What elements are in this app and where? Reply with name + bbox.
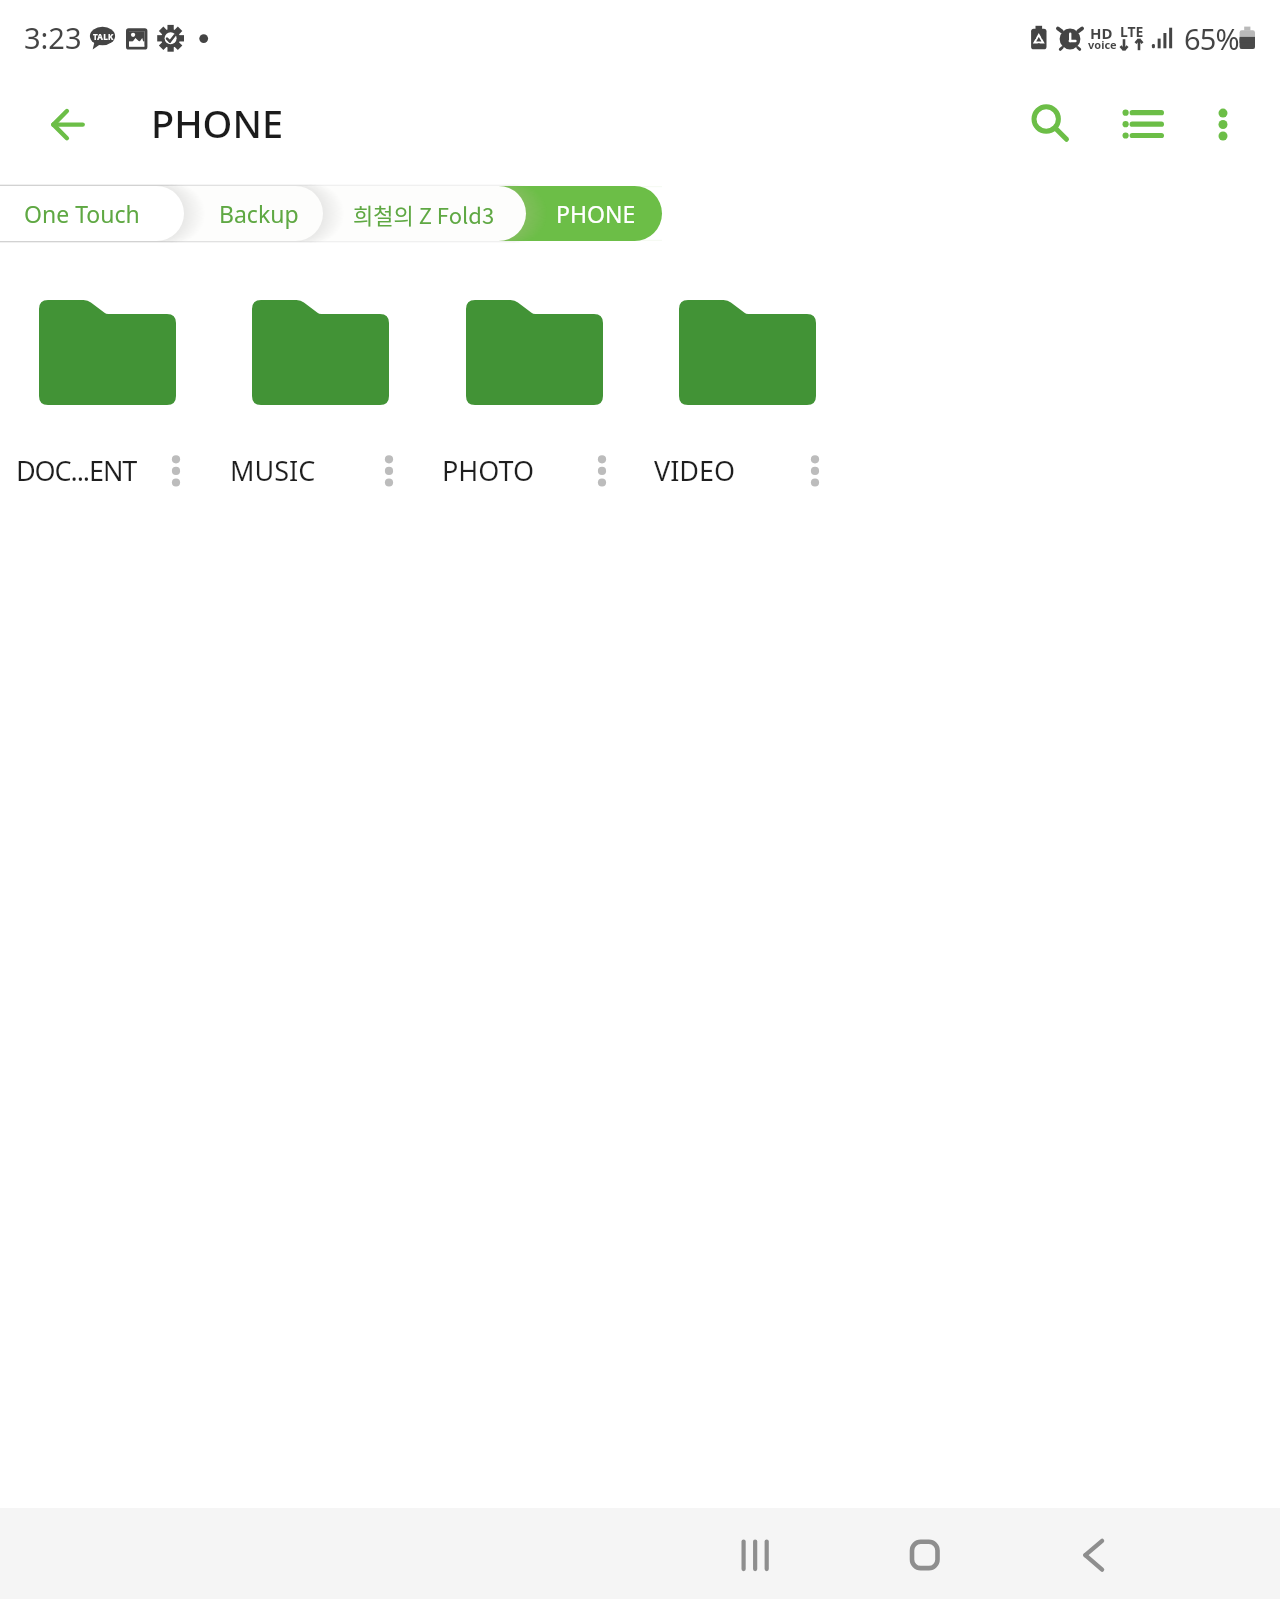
- staticText: PHONE: [151, 97, 284, 149]
- staticText: 3:23: [24, 18, 82, 57]
- button[interactable]: More options for VIDEO: [785, 441, 845, 501]
- staticText: HD: [1090, 23, 1113, 43]
- button[interactable]: Backup: [174, 186, 323, 241]
- button[interactable]: Change view: [1095, 79, 1187, 171]
- button[interactable]: PHONE: [516, 186, 662, 241]
- button[interactable]: More options for PHOTO: [572, 441, 632, 501]
- button[interactable]: Back: [1041, 1508, 1149, 1599]
- staticText: voice: [1088, 37, 1117, 52]
- staticText: LTE: [1120, 22, 1144, 41]
- staticText: PHOTO: [442, 452, 535, 489]
- staticText: One Touch: [24, 198, 140, 229]
- button[interactable]: More options for MUSIC: [359, 441, 419, 501]
- button[interactable]: Search: [1000, 79, 1092, 171]
- button[interactable]: More options: [1177, 79, 1269, 171]
- staticText: 희철의 Z Fold3: [353, 198, 495, 230]
- button[interactable]: Open folder MUSIC: [217, 276, 424, 442]
- button[interactable]: Open folder PHOTO: [431, 276, 638, 442]
- button[interactable]: One Touch: [0, 186, 184, 241]
- staticText: Backup: [219, 198, 299, 229]
- button[interactable]: Recents: [700, 1508, 808, 1599]
- staticText: VIDEO: [654, 452, 736, 489]
- button[interactable]: Home: [870, 1508, 978, 1599]
- button[interactable]: 희철의 Z Fold3: [313, 186, 526, 241]
- button[interactable]: More options for DOC...ENT: [146, 441, 206, 501]
- button[interactable]: Open folder DOC...ENT: [4, 276, 211, 442]
- staticText: 65%: [1184, 19, 1239, 58]
- button[interactable]: Open folder VIDEO: [644, 276, 851, 442]
- staticText: PHONE: [556, 198, 636, 229]
- staticText: DOC...ENT: [16, 452, 137, 489]
- button[interactable]: Navigate up: [22, 79, 114, 171]
- staticText: MUSIC: [230, 452, 316, 489]
- staticText: TALK: [93, 31, 114, 42]
